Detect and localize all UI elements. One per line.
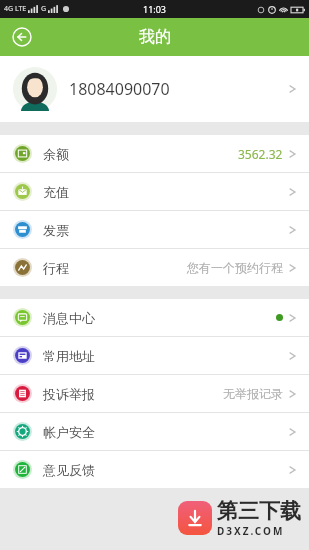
- button[interactable]: Back: [8, 23, 36, 51]
- staticText: 消息中心: [43, 310, 95, 326]
- staticText: 18084090070: [69, 78, 170, 100]
- staticText: 意见反馈: [43, 462, 95, 478]
- staticText: 4G LTE: [4, 4, 27, 14]
- staticText: 行程: [43, 260, 69, 276]
- button[interactable]: 帐户安全: [0, 413, 309, 450]
- button[interactable]: 行程: [0, 249, 309, 286]
- staticText: 11:03: [143, 3, 167, 15]
- staticText: 帐户安全: [43, 424, 95, 440]
- staticText: 无举报记录: [223, 386, 283, 401]
- button[interactable]: 意见反馈: [0, 451, 309, 488]
- staticText: G: [41, 4, 47, 14]
- button[interactable]: 常用地址: [0, 337, 309, 374]
- staticText: 您有一个预约行程: [187, 260, 283, 275]
- staticText: 发票: [43, 222, 69, 238]
- staticText: 余额: [43, 146, 69, 162]
- staticText: 充值: [43, 184, 69, 200]
- button[interactable]: 消息中心: [0, 299, 309, 336]
- staticText: 投诉举报: [43, 386, 95, 402]
- staticText: D3XZ.COM: [217, 524, 285, 538]
- button[interactable]: 发票: [0, 211, 309, 248]
- button[interactable]: 18084090070: [0, 56, 309, 122]
- staticText: 第三下载: [217, 498, 301, 524]
- staticText: 3562.32: [238, 146, 283, 162]
- button[interactable]: 充值: [0, 173, 309, 210]
- button[interactable]: 投诉举报: [0, 375, 309, 412]
- staticText: 常用地址: [43, 348, 95, 364]
- button[interactable]: 余额: [0, 135, 309, 172]
- staticText: 我的: [139, 27, 171, 47]
